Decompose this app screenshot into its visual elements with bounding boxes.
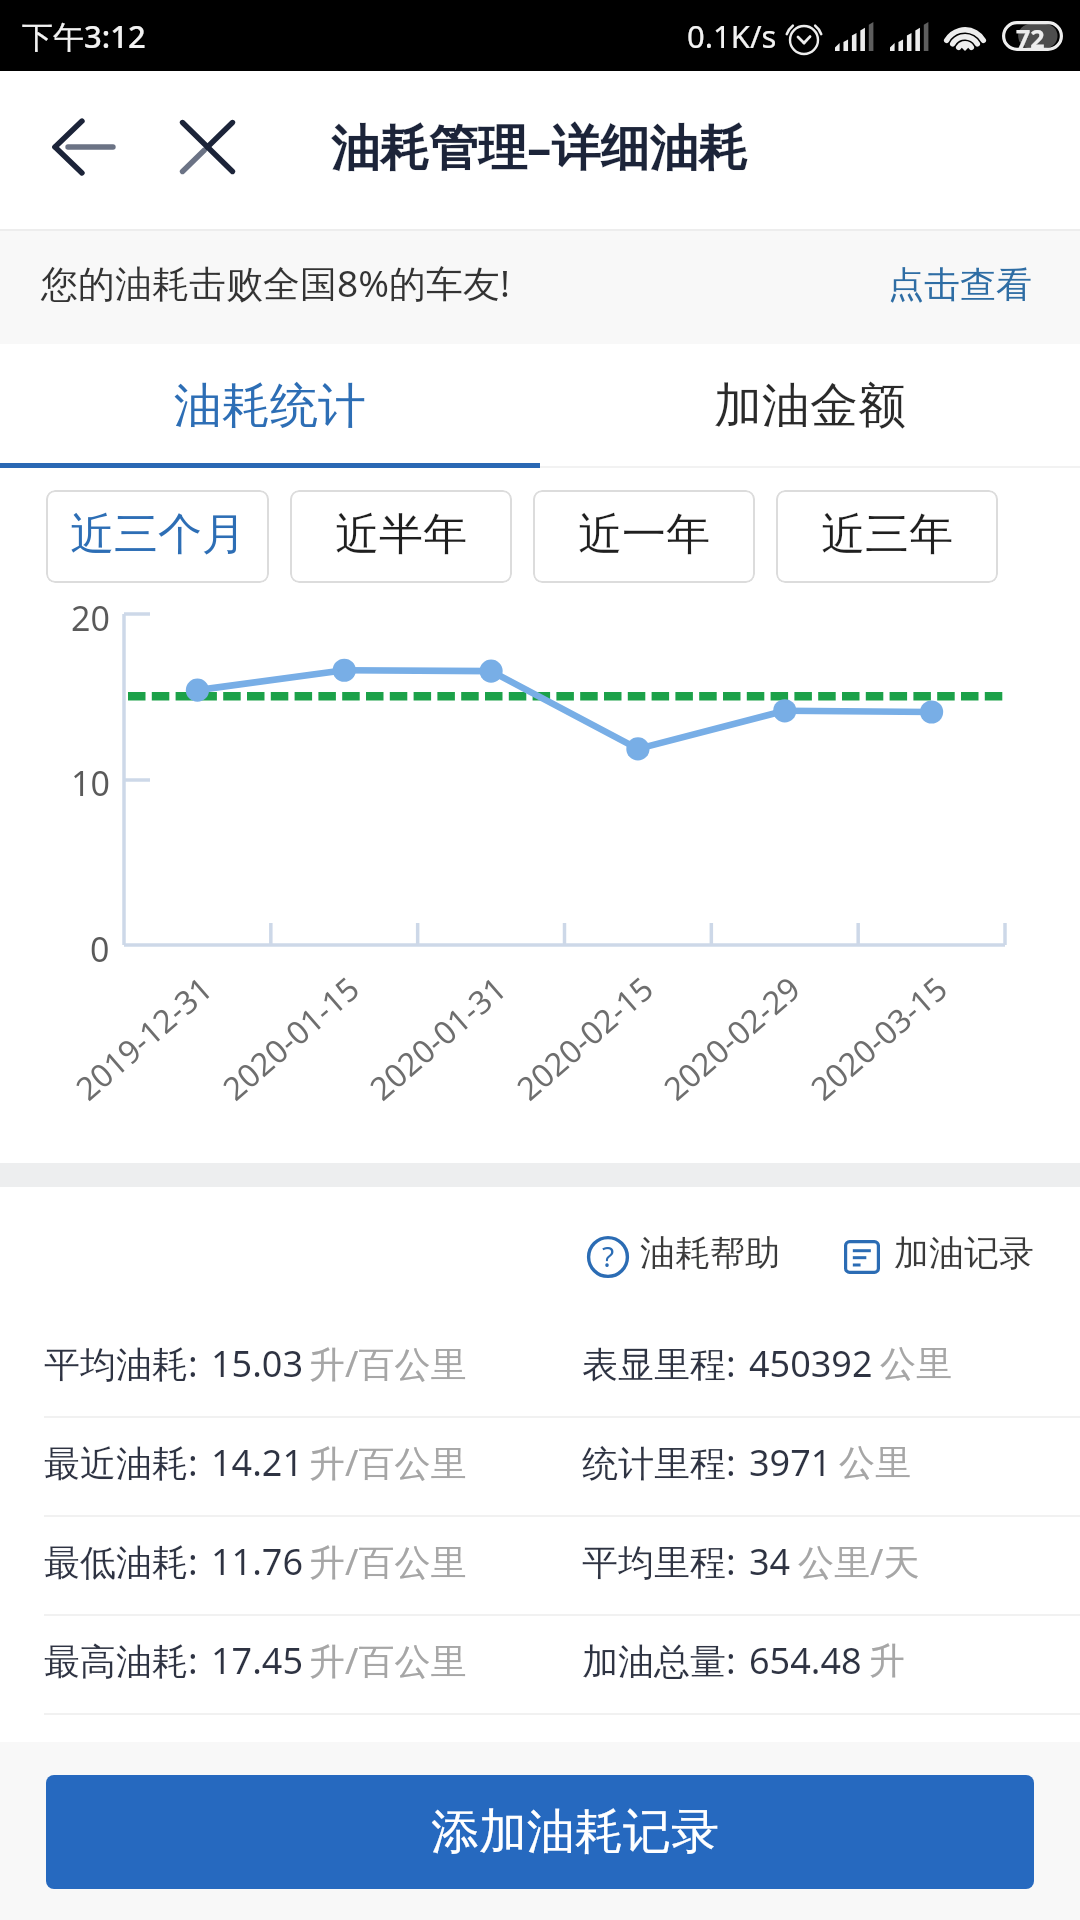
button[interactable]: 加油记录 [840,1225,1038,1289]
staticText: 2019-12-31 [66,966,222,1110]
staticText: 20 [71,595,110,641]
staticText: ? [602,1237,615,1275]
staticText: 近三个月 [70,507,246,562]
staticText: 14.21 [211,1438,304,1487]
button[interactable]: 添加油耗记录 [46,1775,1034,1889]
staticText: 最高油耗: [44,1636,198,1685]
staticText: 公里 [880,1341,952,1386]
staticText: 油耗统计 [174,376,366,436]
staticText: 2020-02-15 [507,966,663,1110]
staticText: 2020-02-29 [654,966,810,1110]
staticText: 近一年 [578,507,710,562]
staticText: 加油总量: [582,1636,736,1685]
staticText: 平均油耗: [44,1339,198,1388]
staticText: 表显里程: [582,1339,736,1388]
staticText: 2020-01-31 [360,966,516,1110]
staticText: 0 [90,926,110,972]
staticText: 最近油耗: [44,1438,198,1487]
staticText: 0.1K/s [687,15,777,57]
button[interactable]: 近三年 [776,490,998,583]
staticText: 2020-03-15 [801,966,957,1110]
staticText: 下午3:12 [22,15,146,57]
button[interactable]: 点击查看 [846,231,1080,344]
staticText: 升/百公里 [309,1537,467,1586]
staticText: 公里/天 [798,1537,920,1586]
staticText: 72 [1016,21,1045,51]
staticText: 最低油耗: [44,1537,198,1586]
button[interactable]: 最近油耗: [0,1418,1080,1515]
button[interactable]: 最低油耗: [0,1517,1080,1614]
staticText: 公里 [839,1440,911,1485]
button[interactable]: 关闭 [167,107,247,187]
staticText: 平均里程: [582,1537,736,1586]
staticText: 3971 [749,1438,832,1487]
staticText: 您的油耗击败全国8%的车友! [41,257,510,308]
button[interactable]: 最高油耗: [0,1616,1080,1713]
button[interactable]: 近半年 [290,490,512,583]
staticText: 加油记录 [894,1231,1034,1275]
staticText: 654.48 [749,1636,862,1685]
staticText: 油耗帮助 [640,1231,780,1275]
staticText: 34 [749,1537,791,1586]
button[interactable]: 平均油耗: [0,1319,1080,1416]
staticText: 升/百公里 [309,1636,467,1685]
staticText: 加油金额 [714,376,906,436]
staticText: 油耗管理–详细油耗 [331,113,748,180]
staticText: 10 [71,760,110,806]
staticText: 17.45 [211,1636,304,1685]
button[interactable]: 返回 [44,107,124,187]
staticText: 升/百公里 [309,1438,467,1487]
staticText: 近三年 [821,507,953,562]
button[interactable]: ? [583,1225,784,1289]
button[interactable]: 油耗统计 [0,344,540,468]
staticText: 统计里程: [582,1438,736,1487]
button[interactable]: 加油金额 [540,344,1080,468]
staticText: 近半年 [335,507,467,562]
staticText: 升/百公里 [309,1339,467,1388]
staticText: 点击查看 [888,262,1032,307]
staticText: 添加油耗记录 [431,1802,719,1862]
staticText: 15.03 [211,1339,304,1388]
button[interactable]: 近三个月 [46,490,269,583]
staticText: 升 [869,1638,905,1683]
staticText: 11.76 [211,1537,304,1586]
button[interactable]: 近一年 [533,490,755,583]
staticText: 2020-01-15 [213,966,369,1110]
staticText: 450392 [749,1339,873,1388]
